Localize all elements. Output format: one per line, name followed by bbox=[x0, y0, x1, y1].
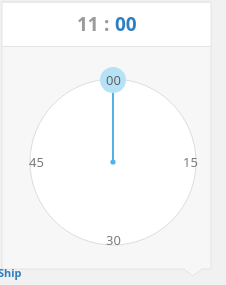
button[interactable]: 15 bbox=[175, 153, 205, 171]
button[interactable]: Ship bbox=[0, 265, 22, 280]
staticText: : bbox=[99, 11, 115, 37]
button[interactable]: 11 bbox=[77, 11, 99, 37]
staticText: 30 bbox=[106, 231, 121, 249]
staticText: Ship bbox=[0, 265, 22, 280]
staticText: 00 bbox=[115, 11, 137, 37]
staticText: 00 bbox=[106, 71, 121, 89]
button[interactable]: 00 bbox=[98, 71, 128, 89]
staticText: 45 bbox=[29, 153, 44, 171]
button[interactable]: 45 bbox=[21, 153, 51, 171]
staticText: 15 bbox=[183, 153, 198, 171]
button[interactable]: 00 bbox=[115, 11, 137, 37]
staticText: 11 bbox=[77, 11, 99, 37]
button[interactable]: 30 bbox=[98, 231, 128, 249]
